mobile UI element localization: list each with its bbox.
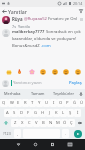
staticText: Yanıtla xyxy=(18,24,30,28)
staticText: N xyxy=(49,120,53,126)
staticText: Z xyxy=(14,120,17,126)
button[interactable]: J xyxy=(46,109,53,117)
staticText: J xyxy=(49,110,51,116)
button[interactable]: Geri xyxy=(10,139,27,150)
button[interactable]: Teşekkürler xyxy=(51,89,77,98)
button[interactable]: Merhaba xyxy=(0,89,25,98)
button[interactable]: Paylaş xyxy=(68,79,83,87)
staticText: 7s xyxy=(12,24,16,28)
staticText: E xyxy=(17,100,20,106)
button[interactable]: M xyxy=(54,119,61,127)
button[interactable]: Geri xyxy=(0,7,8,15)
button[interactable]: G xyxy=(32,109,39,117)
button[interactable]: I xyxy=(50,99,57,107)
staticText: maliberkay7777 xyxy=(12,29,45,35)
button[interactable]: D xyxy=(18,109,25,117)
staticText: O xyxy=(59,100,63,106)
staticText: K xyxy=(55,110,58,116)
button[interactable] xyxy=(39,68,46,75)
staticText: V xyxy=(35,120,38,126)
button[interactable]: P xyxy=(64,99,71,107)
staticText: Teşekkürler xyxy=(53,91,75,96)
button[interactable]: Yanıtınızı yazın xyxy=(11,80,68,86)
staticText: U xyxy=(45,100,49,106)
button[interactable]: X xyxy=(19,119,26,127)
button[interactable]: R xyxy=(22,99,29,107)
button[interactable]: Klavye xyxy=(61,139,78,150)
button[interactable]: Ğ xyxy=(71,99,78,107)
staticText: R xyxy=(24,100,27,106)
button[interactable]: S xyxy=(11,109,18,117)
button[interactable]: H xyxy=(39,109,46,117)
staticText: S xyxy=(13,110,16,116)
button[interactable]: Sil xyxy=(76,119,84,127)
staticText: X xyxy=(21,120,24,126)
button[interactable] xyxy=(16,68,23,75)
button[interactable]: T xyxy=(29,99,36,107)
button[interactable]: Y xyxy=(36,99,43,107)
button[interactable]: Ana ekran xyxy=(27,139,44,150)
staticText: kazandılar, oldunda ve yoduyum! üzleri xyxy=(12,36,83,42)
button[interactable]: Daha fazla xyxy=(79,17,83,21)
staticText: İ xyxy=(77,110,79,116)
button[interactable]: Virgül xyxy=(14,129,21,138)
button[interactable] xyxy=(74,68,81,75)
staticText: Rüya xyxy=(12,16,23,22)
staticText: Paylaş xyxy=(69,80,82,86)
button[interactable]: maliberkay7777 xyxy=(0,28,85,49)
button[interactable]: Shift xyxy=(1,119,10,127)
staticText: ?123 xyxy=(3,131,11,136)
button[interactable]: O xyxy=(57,99,64,107)
staticText: Fırsatını ye Onl xyxy=(48,16,78,22)
button[interactable]: E xyxy=(15,99,22,107)
button[interactable] xyxy=(28,68,35,75)
staticText: F xyxy=(27,110,30,116)
staticText: I xyxy=(53,100,55,106)
staticText: Sonradsuk en çok xyxy=(46,29,81,35)
button[interactable]: Ü xyxy=(78,99,85,107)
staticText: Yanıtlar xyxy=(8,8,27,15)
button[interactable]: Tamam xyxy=(25,89,51,98)
staticText: Q xyxy=(2,100,6,106)
staticText: B xyxy=(42,120,45,126)
staticText: Tamam xyxy=(31,91,45,96)
button[interactable]: Z xyxy=(11,119,19,127)
button[interactable] xyxy=(5,68,12,75)
button[interactable]: Ö xyxy=(61,119,68,127)
button[interactable]: L xyxy=(60,109,67,117)
button[interactable]: Nokta xyxy=(62,129,69,138)
staticText: 20:14 xyxy=(73,1,83,6)
staticText: . xyxy=(65,131,67,136)
staticText: C xyxy=(28,120,31,126)
button[interactable]: A xyxy=(4,109,11,117)
button[interactable]: U xyxy=(43,99,50,107)
staticText: Ç xyxy=(70,120,73,126)
button[interactable] xyxy=(51,68,58,75)
button[interactable]: Ç xyxy=(68,119,75,127)
button[interactable]: Son kullanılanlar xyxy=(44,139,61,150)
staticText: Ü xyxy=(80,100,84,106)
button[interactable]: W xyxy=(8,99,15,107)
staticText: L xyxy=(62,110,65,116)
button[interactable]: V xyxy=(33,119,40,127)
button[interactable]: Ş xyxy=(67,109,74,117)
button[interactable]: Gönder xyxy=(71,129,84,138)
button[interactable]: F xyxy=(25,109,32,117)
button[interactable]: ?123 xyxy=(1,129,12,138)
staticText: Merhaba xyxy=(4,91,21,96)
button[interactable]: Sesle yaz xyxy=(77,89,85,98)
button[interactable]: N xyxy=(47,119,54,127)
button[interactable]: Q xyxy=(0,99,8,107)
staticText: .com xyxy=(41,43,51,49)
button[interactable]: Filtrele xyxy=(76,7,85,15)
button[interactable]: B xyxy=(40,119,47,127)
staticText: , xyxy=(17,131,19,136)
button[interactable]: Rüya xyxy=(0,15,85,28)
button[interactable]: İ xyxy=(74,109,81,117)
button[interactable]: K xyxy=(53,109,60,117)
staticText: Ö xyxy=(63,120,67,126)
button[interactable]: C xyxy=(26,119,33,127)
staticText: G xyxy=(34,110,38,116)
button[interactable] xyxy=(62,68,69,75)
